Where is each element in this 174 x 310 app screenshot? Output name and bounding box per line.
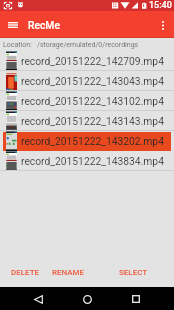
button[interactable]: record_20151222_143202.mp4: [0, 131, 174, 151]
button[interactable]: record_20151222_143043.mp4: [0, 71, 174, 91]
staticText: Location: /storage/emulated/0/recordings: [3, 41, 139, 49]
staticText: record_20151222_142709.mp4: [21, 55, 164, 67]
button[interactable]: SELECT: [118, 266, 149, 279]
staticText: record_20151222_143202.mp4: [21, 135, 164, 147]
button[interactable]: Recent apps: [125, 288, 147, 310]
button[interactable]: record_20151222_143834.mp4: [0, 151, 174, 171]
staticText: DELETE: [11, 268, 40, 277]
staticText: RecMe: [28, 19, 60, 31]
button[interactable]: record_20151222_143102.mp4: [0, 91, 174, 111]
button[interactable]: Back: [27, 288, 49, 310]
staticText: record_20151222_143143.mp4: [21, 115, 164, 127]
button[interactable]: DELETE: [10, 266, 41, 279]
button[interactable]: Home: [76, 288, 98, 310]
staticText: record_20151222_143043.mp4: [21, 75, 164, 87]
staticText: RENAME: [52, 268, 85, 277]
button[interactable]: Navigation menu: [3, 15, 23, 35]
staticText: SELECT: [119, 268, 148, 277]
button[interactable]: More options: [154, 16, 172, 34]
button[interactable]: record_20151222_143143.mp4: [0, 111, 174, 131]
staticText: record_20151222_143102.mp4: [21, 95, 164, 107]
staticText: 15:40: [149, 0, 172, 10]
staticText: record_20151222_143834.mp4: [21, 155, 164, 167]
button[interactable]: RENAME: [51, 266, 86, 279]
button[interactable]: record_20151222_142709.mp4: [0, 51, 174, 71]
